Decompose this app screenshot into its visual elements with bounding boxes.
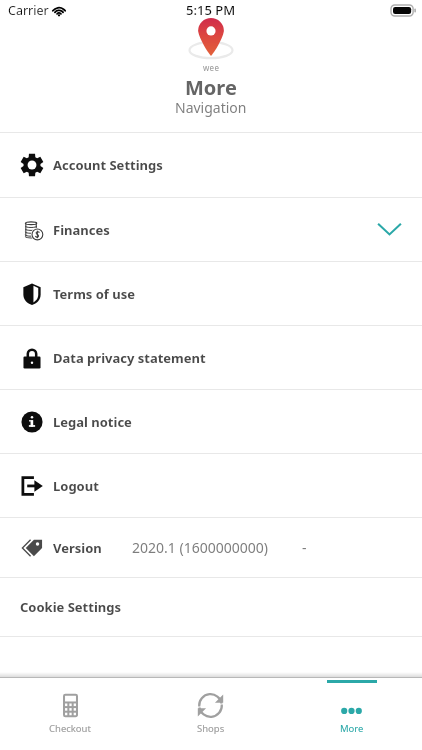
button[interactable]: Legal notice: [0, 390, 422, 453]
staticText: Legal notice: [53, 413, 132, 431]
staticText: More: [340, 722, 364, 735]
button[interactable]: Data privacy statement: [0, 326, 422, 389]
button[interactable]: Cookie Settings: [0, 578, 422, 636]
staticText: Cookie Settings: [20, 598, 121, 616]
staticText: Navigation: [175, 98, 247, 117]
button[interactable]: Account Settings: [0, 133, 422, 197]
staticText: wee: [203, 62, 220, 73]
staticText: Shops: [197, 722, 225, 735]
staticText: Terms of use: [53, 285, 136, 303]
staticText: Finances: [53, 221, 110, 239]
button[interactable]: Version: [0, 518, 422, 577]
button[interactable]: More: [281, 678, 422, 735]
button[interactable]: Logout: [0, 454, 422, 517]
staticText: Data privacy statement: [53, 349, 206, 367]
button[interactable]: Terms of use: [0, 262, 422, 325]
staticText: Version: [53, 539, 102, 557]
staticText: 5:15 PM: [186, 1, 236, 19]
staticText: 2020.1 (1600000000): [132, 538, 268, 557]
staticText: Carrier: [8, 2, 49, 19]
button[interactable]: Shops: [140, 678, 281, 735]
staticText: -: [302, 538, 307, 557]
staticText: Logout: [53, 477, 99, 495]
staticText: Checkout: [49, 722, 91, 735]
button[interactable]: Finances: [0, 198, 422, 261]
button[interactable]: Checkout: [0, 678, 140, 735]
staticText: Account Settings: [53, 156, 163, 174]
staticText: More: [185, 74, 237, 101]
